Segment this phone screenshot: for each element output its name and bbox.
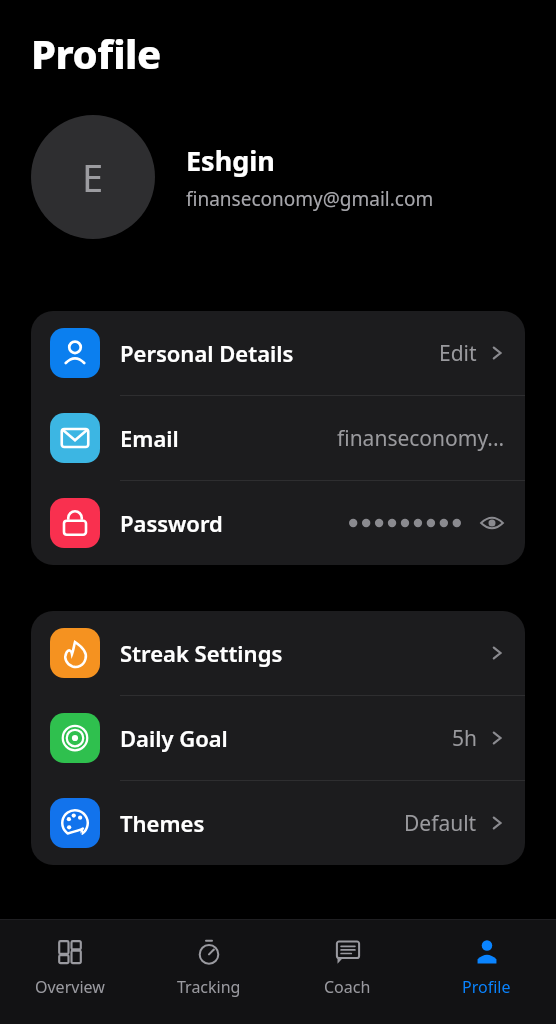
staticText: Coach	[324, 976, 371, 998]
staticText: Personal Details	[120, 338, 294, 368]
staticText: Email	[120, 423, 179, 453]
button[interactable]: Password	[31, 481, 525, 565]
staticText: Edit	[439, 339, 477, 368]
button[interactable]: Coach	[278, 920, 417, 1024]
button[interactable]: Overview	[0, 920, 139, 1024]
button[interactable]: Personal Details	[31, 311, 525, 395]
staticText: 5h	[452, 724, 477, 753]
staticText: Daily Goal	[120, 723, 228, 753]
button[interactable]: Themes	[31, 781, 525, 865]
staticText: Tracking	[177, 976, 241, 998]
staticText: Streak Settings	[120, 638, 283, 668]
button[interactable]: Streak Settings	[31, 611, 525, 695]
staticText: finanseconomy...	[337, 424, 505, 453]
staticText: Default	[404, 809, 477, 838]
staticText: Eshgin	[186, 142, 275, 179]
button[interactable]: Profile	[417, 920, 556, 1024]
button[interactable]: Daily Goal	[31, 696, 525, 780]
staticText: Profile	[462, 976, 511, 998]
staticText: Password	[120, 508, 223, 538]
staticText: Profile	[31, 26, 161, 80]
button[interactable]: Email	[31, 396, 525, 480]
staticText: Themes	[120, 808, 205, 838]
staticText: E	[82, 151, 104, 203]
button[interactable]: Show password	[479, 510, 505, 536]
button[interactable]: Tracking	[139, 920, 278, 1024]
staticText: finanseconomy@gmail.com	[186, 186, 434, 212]
staticText: Overview	[35, 976, 105, 998]
